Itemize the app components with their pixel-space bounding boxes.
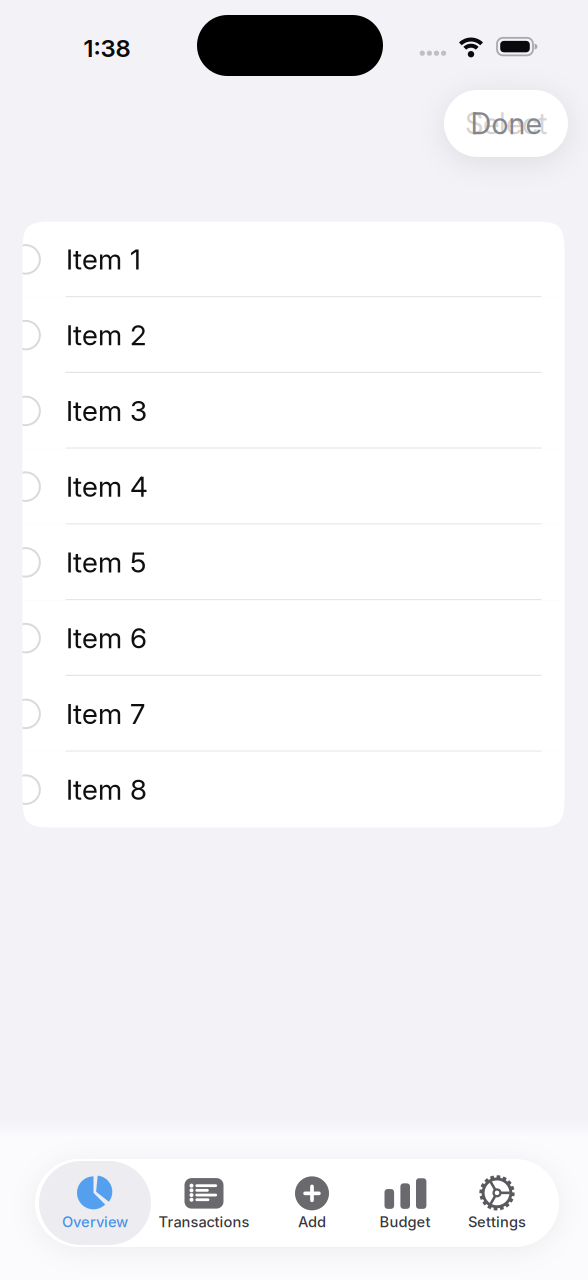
staticText: Add xyxy=(298,1213,326,1231)
button[interactable]: Item 1 xyxy=(22,221,564,297)
staticText: Transactions xyxy=(158,1213,249,1231)
button[interactable]: Item 2 xyxy=(22,297,564,373)
button[interactable]: Item 3 xyxy=(22,373,564,449)
staticText: Overview xyxy=(62,1213,128,1231)
button[interactable]: Item 4 xyxy=(22,449,564,525)
staticText: Item 5 xyxy=(66,546,146,579)
staticText: Item 4 xyxy=(66,470,148,503)
button[interactable]: Item 5 xyxy=(22,524,564,600)
button[interactable]: Overview xyxy=(39,1161,151,1245)
staticText: Select xyxy=(465,106,547,141)
staticText: Item 1 xyxy=(66,243,141,276)
button[interactable]: Item 7 xyxy=(22,676,564,752)
staticText: Item 2 xyxy=(66,319,147,352)
button[interactable]: Item 6 xyxy=(22,600,564,676)
button[interactable]: Settings xyxy=(452,1161,542,1245)
staticText: 1:38 xyxy=(83,34,130,62)
staticText: Item 7 xyxy=(66,697,145,730)
button[interactable]: Add xyxy=(277,1161,347,1245)
button[interactable]: Transactions xyxy=(146,1161,262,1245)
staticText: Settings xyxy=(468,1213,526,1231)
staticText: Item 8 xyxy=(66,773,147,806)
staticText: Done xyxy=(470,106,541,141)
button[interactable]: Budget xyxy=(365,1161,445,1245)
button[interactable]: Done xyxy=(444,90,568,157)
staticText: Item 6 xyxy=(66,622,147,655)
staticText: Budget xyxy=(379,1213,430,1231)
staticText: Item 3 xyxy=(66,394,147,427)
button[interactable]: Item 8 xyxy=(22,752,564,828)
